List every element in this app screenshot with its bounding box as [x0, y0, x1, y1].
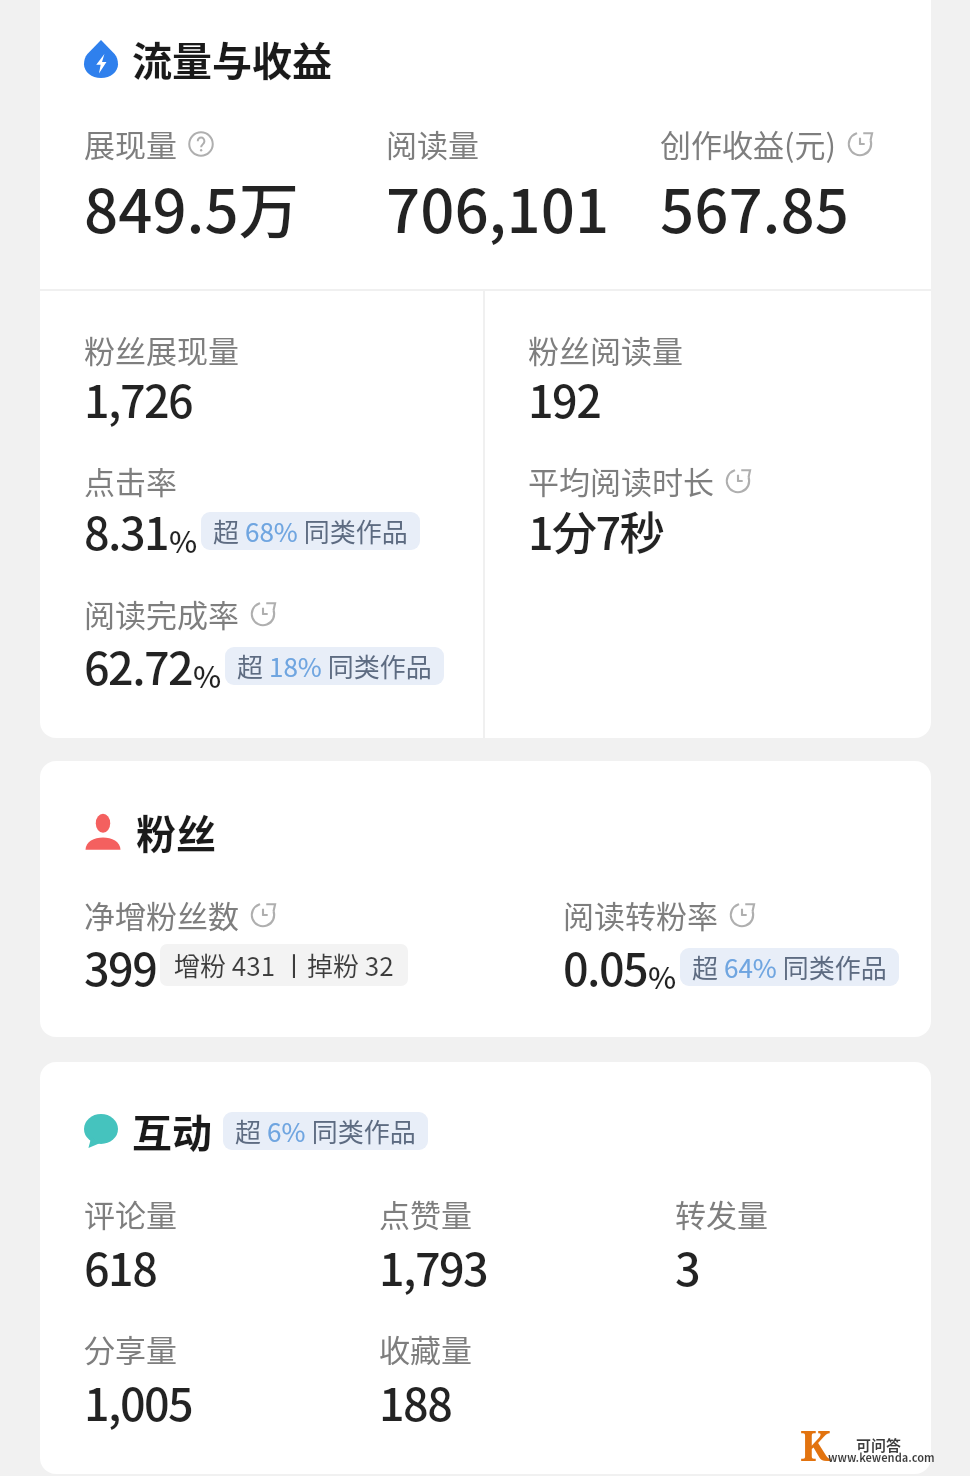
- staticText: 分享量: [84, 1326, 177, 1371]
- button[interactable]: 互动: [40, 1062, 931, 1474]
- staticText: 1,726: [84, 366, 193, 431]
- staticText: 互动: [132, 1102, 212, 1160]
- staticText: 同类作品: [777, 948, 887, 986]
- button[interactable]: 超: [225, 647, 444, 685]
- button[interactable]: 平均阅读时长 数据延迟说明: [724, 467, 752, 495]
- staticText: 创作收益(元): [660, 121, 836, 166]
- staticText: 6%: [267, 1112, 306, 1150]
- staticText: 188: [379, 1369, 452, 1434]
- staticText: %: [648, 954, 677, 997]
- staticText: 粉丝阅读量: [528, 327, 683, 372]
- button[interactable]: 净增粉丝数 数据延迟说明: [249, 901, 277, 929]
- staticText: 粉丝: [136, 803, 216, 861]
- staticText: 849.5万: [84, 163, 299, 250]
- staticText: 增粉 431 丨掉粉 32: [174, 946, 394, 984]
- staticText: 1分7秒: [528, 498, 664, 563]
- staticText: 706,101: [386, 163, 610, 250]
- staticText: %: [169, 518, 198, 561]
- button[interactable]: 增粉 431 丨掉粉 32: [160, 944, 408, 986]
- staticText: 流量与收益: [132, 30, 332, 88]
- staticText: 阅读量: [386, 121, 479, 166]
- staticText: www.kewenda.com: [828, 1449, 935, 1465]
- staticText: 粉丝展现量: [84, 327, 239, 372]
- staticText: 同类作品: [298, 512, 408, 550]
- staticText: 超: [213, 512, 245, 550]
- staticText: 3: [675, 1234, 700, 1299]
- staticText: 399: [84, 934, 157, 999]
- staticText: 转发量: [675, 1191, 768, 1236]
- staticText: 567.85: [660, 163, 849, 250]
- staticText: 192: [528, 366, 601, 431]
- staticText: 净增粉丝数: [84, 892, 239, 937]
- staticText: 618: [84, 1234, 157, 1299]
- staticText: 展现量: [84, 121, 177, 166]
- staticText: 可问答: [856, 1434, 902, 1456]
- staticText: 点赞量: [379, 1191, 472, 1236]
- staticText: K: [800, 1416, 831, 1462]
- button[interactable]: 创作收益(元) 数据延迟说明: [846, 130, 874, 158]
- staticText: 阅读完成率: [84, 591, 239, 636]
- button[interactable]: 超: [223, 1112, 428, 1150]
- staticText: 62.72: [84, 633, 193, 698]
- button[interactable]: 阅读完成率 数据延迟说明: [249, 600, 277, 628]
- staticText: 超: [235, 1112, 267, 1150]
- staticText: 收藏量: [379, 1326, 472, 1371]
- staticText: 1,793: [379, 1234, 488, 1299]
- staticText: 同类作品: [322, 647, 432, 685]
- staticText: 8.31: [84, 498, 169, 563]
- button[interactable]: 阅读转粉率 数据延迟说明: [728, 901, 756, 929]
- staticText: 超: [692, 948, 724, 986]
- button[interactable]: 流量与收益: [40, 0, 931, 738]
- staticText: 平均阅读时长: [528, 458, 714, 503]
- staticText: 0.05: [563, 934, 648, 999]
- staticText: 64%: [724, 948, 777, 986]
- staticText: 点击率: [84, 458, 177, 503]
- button[interactable]: 超: [680, 948, 899, 986]
- staticText: 1,005: [84, 1369, 193, 1434]
- button[interactable]: 粉丝: [40, 761, 931, 1037]
- staticText: 同类作品: [306, 1112, 416, 1150]
- staticText: 超: [237, 647, 269, 685]
- staticText: 68%: [245, 512, 298, 550]
- staticText: 18%: [269, 647, 322, 685]
- button[interactable]: 超: [201, 512, 420, 550]
- staticText: %: [193, 653, 222, 696]
- button[interactable]: 关于展现量: [187, 130, 215, 158]
- staticText: 阅读转粉率: [563, 892, 718, 937]
- staticText: 评论量: [84, 1191, 177, 1236]
